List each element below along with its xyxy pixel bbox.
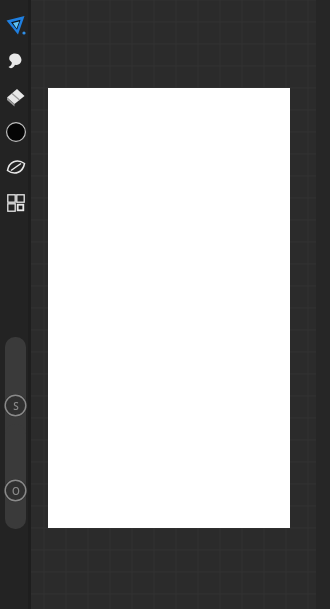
button[interactable]: Slider handle O xyxy=(3,478,28,503)
button[interactable]: Slider handle S xyxy=(3,393,28,418)
staticText: O xyxy=(12,484,20,498)
button[interactable]: Infinite Painter xyxy=(3,10,29,40)
button[interactable]: Layers xyxy=(3,188,29,218)
staticText: S xyxy=(13,399,19,413)
button[interactable]: Slider O xyxy=(5,424,26,529)
button[interactable]: Smudge xyxy=(3,46,29,76)
button[interactable]: Slider S xyxy=(5,337,26,442)
button[interactable]: Blend mode xyxy=(3,152,29,182)
button[interactable]: Colour xyxy=(3,117,29,147)
button[interactable]: Eraser xyxy=(3,82,29,112)
